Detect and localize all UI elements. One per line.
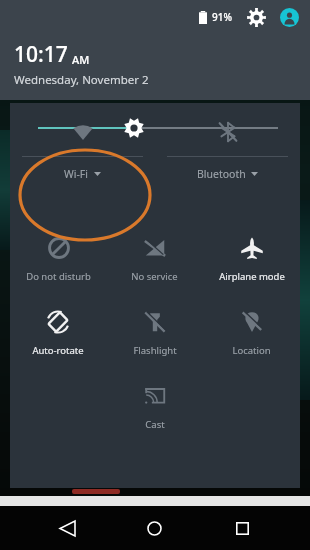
button[interactable]: Back — [47, 508, 87, 548]
button[interactable]: Bluetooth — [155, 103, 300, 181]
staticText: Bluetooth — [197, 167, 246, 181]
staticText: Location — [232, 344, 271, 357]
button[interactable]: Do not disturb — [10, 227, 106, 301]
staticText: AM — [72, 52, 90, 67]
staticText: Airplane mode — [219, 270, 285, 283]
staticText: No service — [131, 270, 178, 283]
staticText: Wi-Fi — [64, 167, 89, 181]
staticText: Auto-rotate — [32, 344, 84, 357]
button[interactable]: Home — [134, 508, 174, 548]
button[interactable]: Settings — [245, 6, 267, 28]
button[interactable]: Wi-Fi — [10, 103, 155, 181]
button[interactable]: No service — [106, 227, 203, 301]
staticText: Wednesday, November 2 — [14, 72, 149, 88]
button[interactable]: Location — [203, 301, 300, 375]
button[interactable]: Flashlight — [106, 301, 203, 375]
staticText: Do not disturb — [26, 270, 91, 283]
button[interactable]: Brightness — [10, 103, 300, 149]
button[interactable]: User profile — [278, 6, 300, 28]
button[interactable]: Recent apps — [222, 508, 262, 548]
staticText: 10:17 — [14, 40, 68, 69]
button[interactable]: Airplane mode — [203, 227, 300, 301]
staticText: Cast — [145, 418, 165, 431]
staticText: 91% — [212, 10, 232, 24]
button[interactable]: Auto-rotate — [10, 301, 106, 375]
staticText: Flashlight — [133, 344, 177, 357]
button[interactable]: Cast — [106, 375, 203, 449]
